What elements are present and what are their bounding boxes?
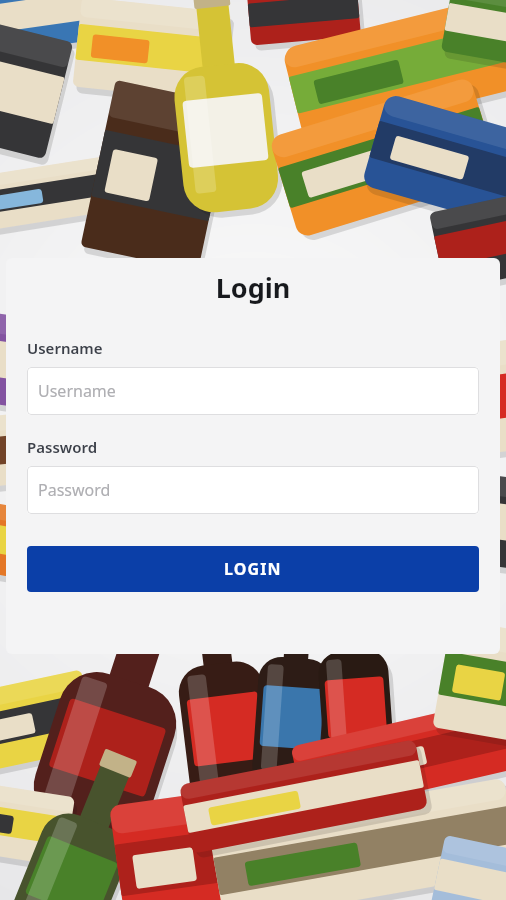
staticText: LOGIN (224, 558, 282, 580)
staticText: Password (38, 479, 111, 501)
staticText: Username (27, 338, 103, 358)
button[interactable]: LOGIN (27, 546, 479, 592)
button[interactable]: Password (27, 466, 479, 514)
staticText: Password (27, 437, 98, 457)
staticText: Username (38, 380, 116, 402)
button[interactable]: Username (27, 367, 479, 415)
staticText: Login (27, 269, 479, 306)
